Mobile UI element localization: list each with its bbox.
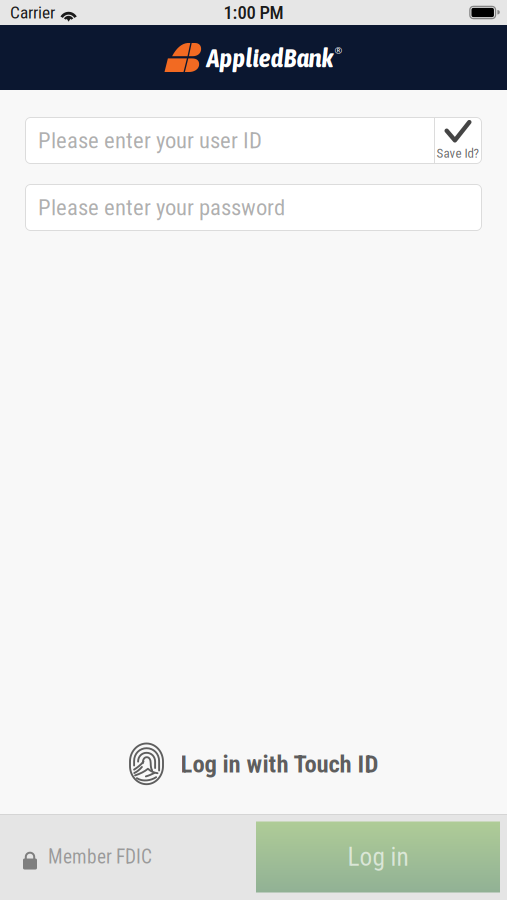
staticText: AppliedBank (206, 42, 333, 73)
button[interactable]: Save Id? (434, 117, 482, 164)
button[interactable]: Log in (256, 821, 500, 892)
staticText: 1:00 PM (223, 2, 283, 23)
staticText: Save Id? (436, 146, 479, 161)
staticText: Please enter your password (38, 194, 285, 221)
button[interactable]: Log in with Touch ID (128, 736, 378, 792)
staticText: Please enter your user ID (38, 127, 262, 154)
staticText: Log in with Touch ID (180, 749, 378, 778)
staticText: Log in (347, 842, 408, 872)
staticText: ® (334, 44, 342, 57)
staticText: Member FDIC (48, 846, 152, 868)
staticText: Carrier (10, 2, 55, 23)
